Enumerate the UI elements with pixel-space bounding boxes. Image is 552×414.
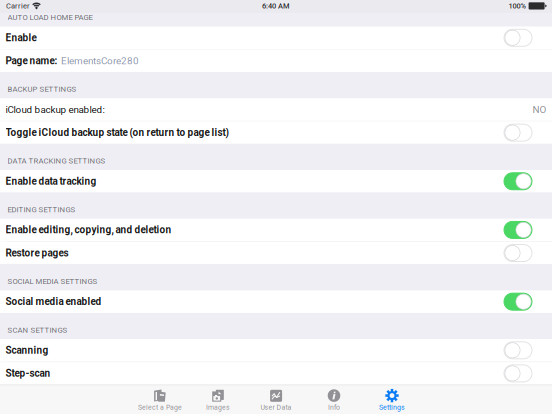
staticText: Info: [328, 403, 340, 411]
staticText: Social media enabled: [6, 296, 102, 307]
staticText: ElementsCore280: [61, 55, 139, 67]
staticText: Settings: [379, 403, 405, 411]
staticText: EDITING SETTINGS: [7, 205, 75, 214]
button[interactable]: Images: [189, 385, 247, 414]
button[interactable]: Select a Page: [131, 385, 189, 414]
button[interactable]: Toggle iCloud backup state (on return to…: [0, 121, 552, 144]
staticText: 6:40 AM: [262, 1, 290, 10]
staticText: Step-scan: [6, 368, 51, 379]
staticText: Scanning: [6, 344, 49, 356]
staticText: NO: [532, 104, 546, 115]
button[interactable]: Enable: [0, 26, 552, 49]
staticText: BACKUP SETTINGS: [7, 85, 76, 94]
button[interactable]: Restore pages: [0, 242, 552, 264]
staticText: Images: [206, 403, 230, 411]
button[interactable]: Page name:: [0, 50, 552, 72]
button[interactable]: Step-scan: [0, 362, 552, 385]
staticText: Enable: [6, 32, 37, 44]
staticText: SCAN SETTINGS: [7, 325, 67, 335]
button[interactable]: Info: [305, 385, 363, 414]
staticText: Page name:: [6, 55, 58, 67]
staticText: Toggle iCloud backup state (on return to…: [6, 127, 230, 138]
button[interactable]: Social media enabled: [0, 290, 552, 313]
staticText: Enable data tracking: [6, 175, 97, 187]
staticText: DATA TRACKING SETTINGS: [7, 156, 105, 165]
staticText: iCloud backup enabled:: [6, 104, 105, 115]
button[interactable]: Settings: [363, 385, 421, 414]
button[interactable]: Enable editing, copying, and deletion: [0, 219, 552, 241]
button[interactable]: Scanning: [0, 339, 552, 362]
staticText: Restore pages: [6, 247, 69, 259]
staticText: User Data: [260, 403, 291, 411]
staticText: Carrier: [6, 1, 30, 10]
staticText: Enable editing, copying, and deletion: [6, 224, 172, 236]
button[interactable]: Enable data tracking: [0, 170, 552, 193]
staticText: Select a Page: [138, 403, 182, 411]
button[interactable]: User Data: [247, 385, 305, 414]
staticText: AUTO LOAD HOME PAGE: [7, 13, 92, 22]
staticText: SOCIAL MEDIA SETTINGS: [7, 277, 97, 286]
staticText: 100%: [509, 1, 526, 10]
button[interactable]: iCloud backup enabled:: [0, 98, 552, 121]
